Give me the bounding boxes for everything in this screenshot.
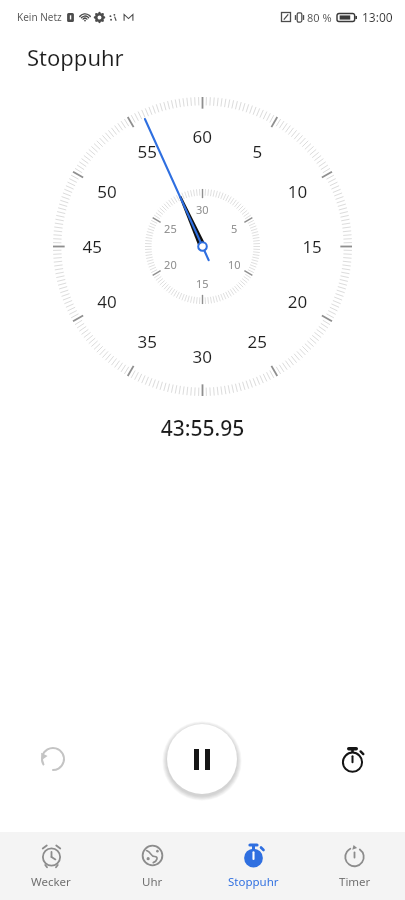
button[interactable]: Uhr bbox=[102, 832, 203, 900]
button[interactable]: Wecker bbox=[0, 832, 102, 900]
staticText: 13:00 bbox=[362, 9, 393, 25]
button[interactable]: Timer bbox=[304, 832, 405, 900]
staticText: 80 % bbox=[307, 10, 332, 25]
staticText: Kein Netz bbox=[17, 10, 62, 24]
button[interactable]: Stoppuhr bbox=[203, 832, 304, 900]
staticText: Stoppuhr bbox=[27, 42, 124, 72]
button[interactable]: Pause bbox=[167, 724, 237, 794]
staticText: 43:55.95 bbox=[0, 414, 405, 443]
staticText: Wecker bbox=[31, 874, 71, 890]
staticText: Timer bbox=[339, 874, 371, 890]
staticText: Uhr bbox=[142, 874, 163, 890]
button[interactable]: Runde bbox=[20, 726, 86, 792]
button[interactable]: Zwischenzeit bbox=[319, 726, 385, 792]
staticText: Stoppuhr bbox=[228, 874, 279, 890]
